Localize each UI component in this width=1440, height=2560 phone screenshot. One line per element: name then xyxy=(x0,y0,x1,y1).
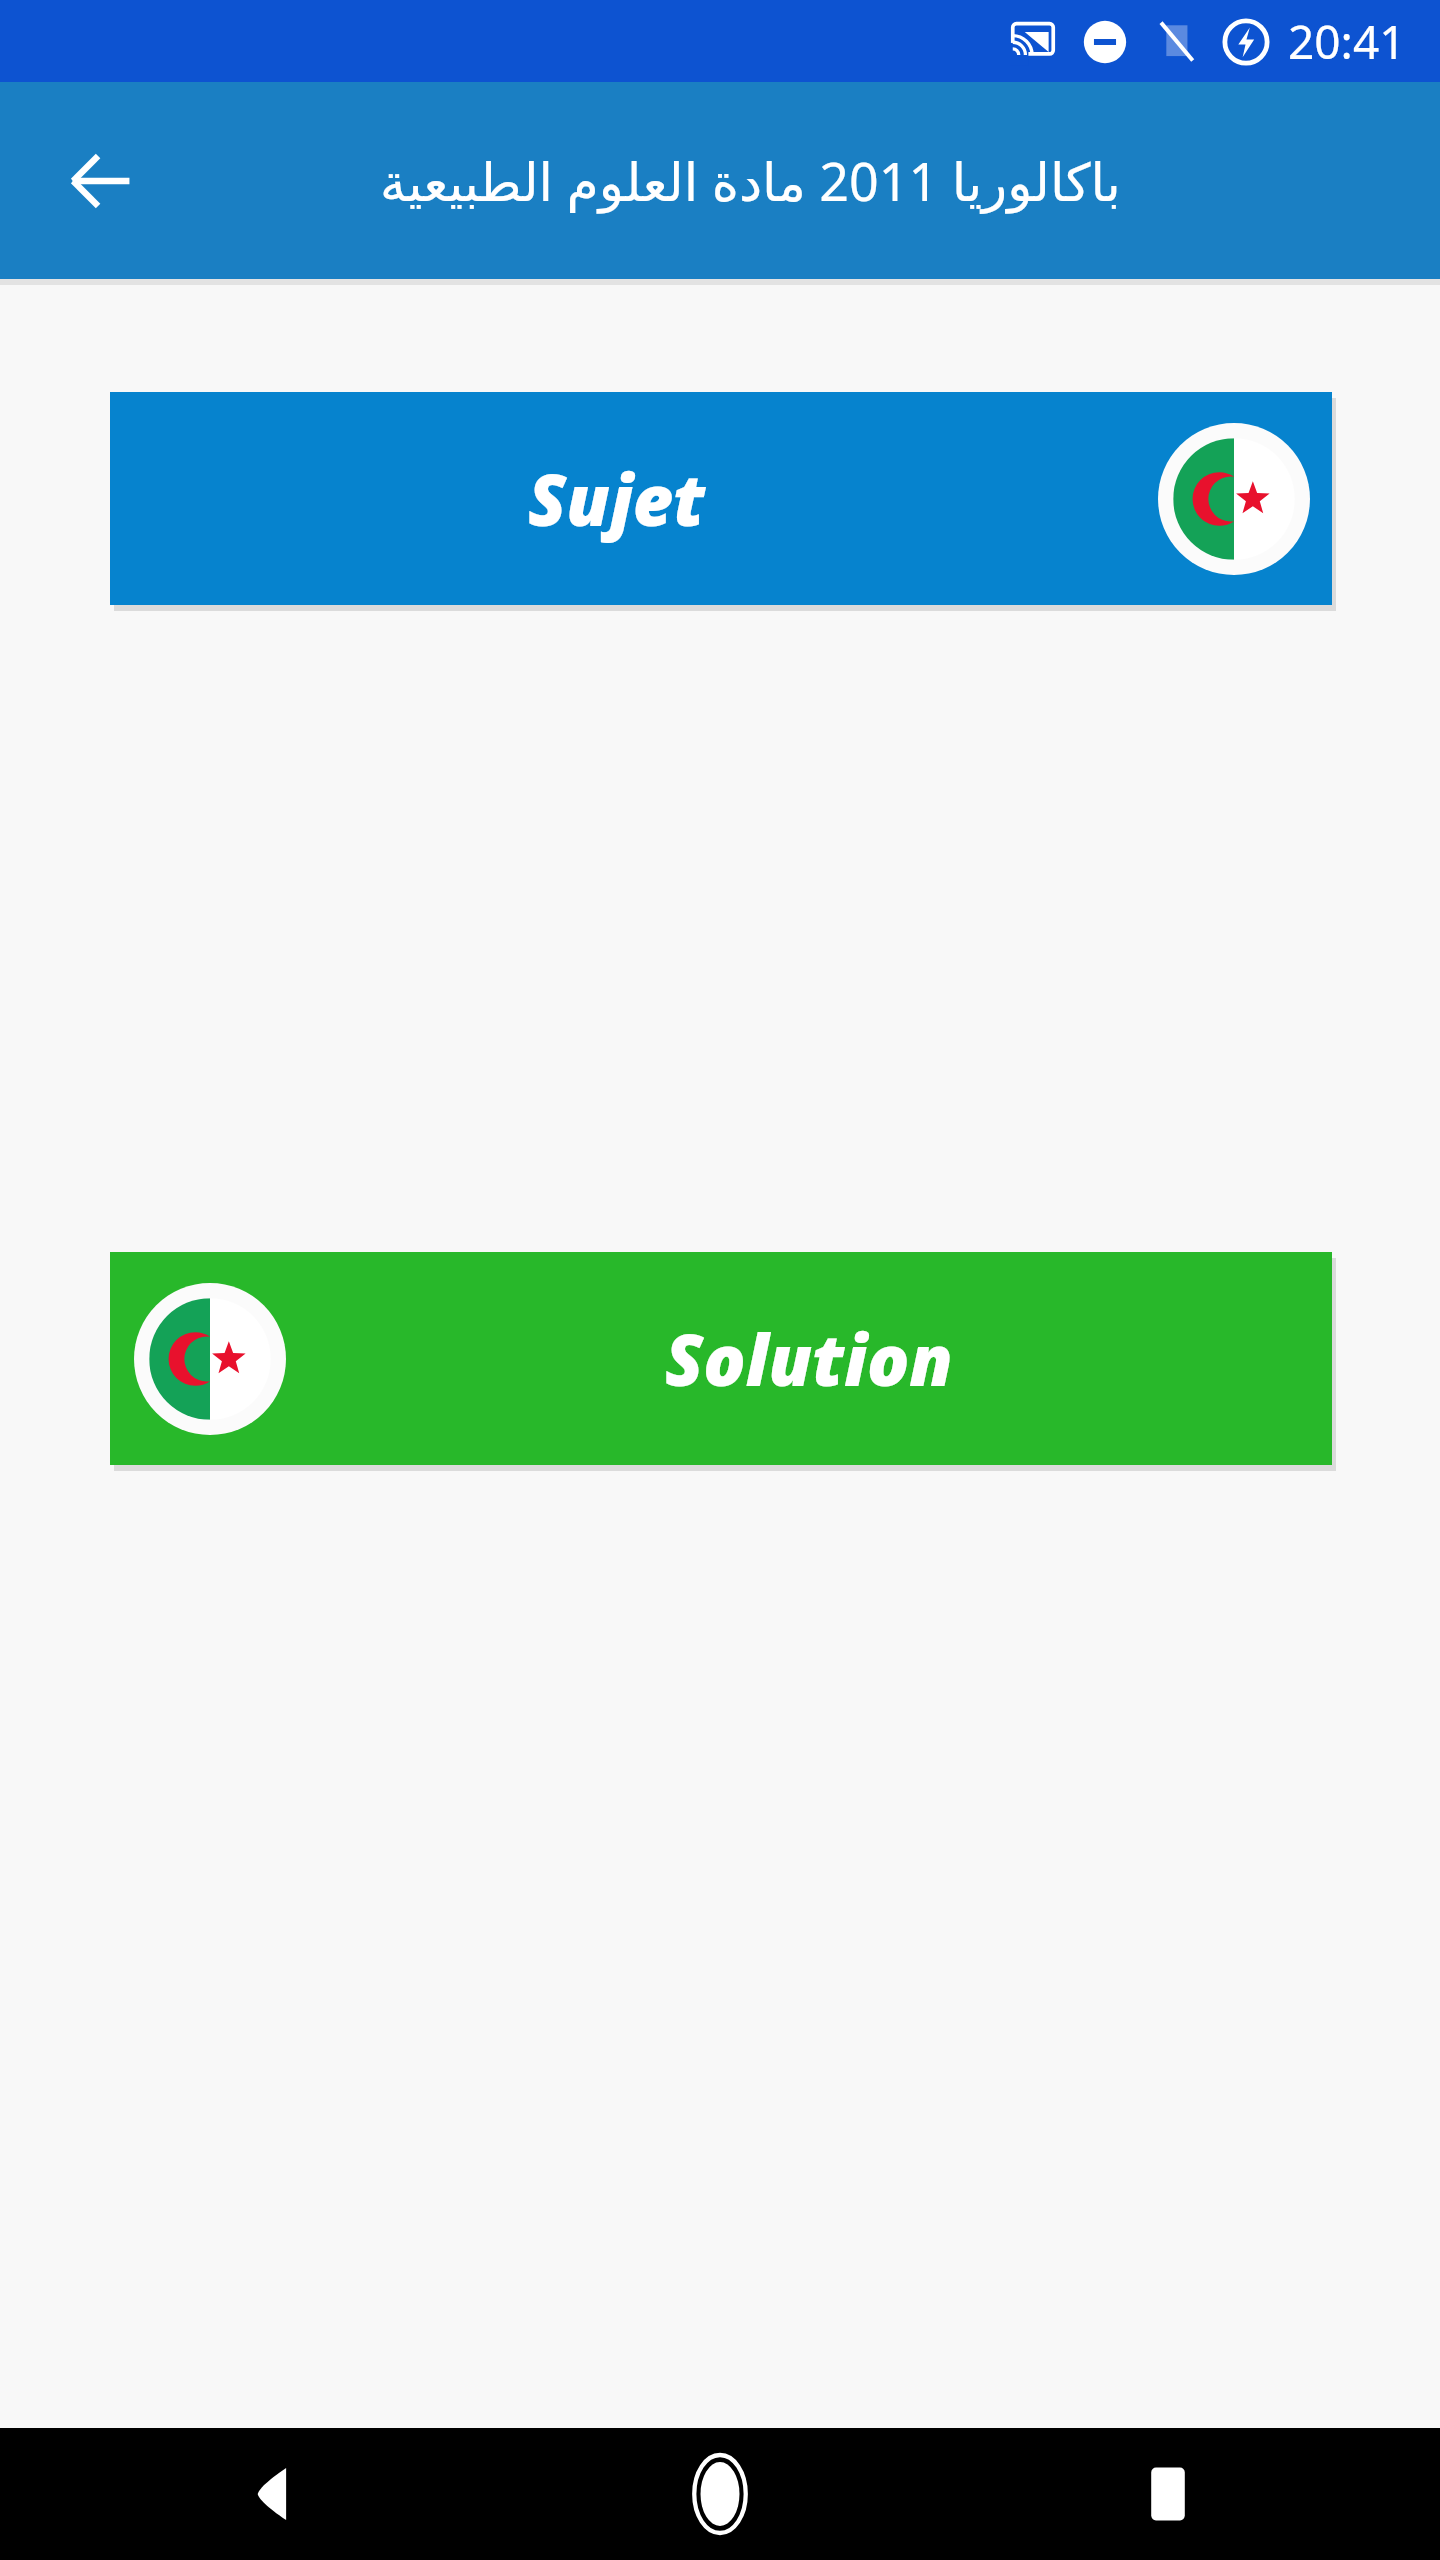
staticText: باكالوريا 2011 مادة العلوم الطبيعية xyxy=(380,145,1121,216)
button[interactable]: Back xyxy=(222,2438,334,2550)
staticText: Solution xyxy=(665,1311,953,1406)
staticText: Sujet xyxy=(528,451,706,546)
button[interactable]: Home xyxy=(664,2438,776,2550)
button[interactable]: Recent apps xyxy=(1112,2438,1224,2550)
button[interactable]: Solution xyxy=(110,1252,1332,1465)
staticText: 20:41 xyxy=(1288,10,1406,73)
button[interactable]: Sujet xyxy=(110,392,1332,605)
button[interactable]: Back xyxy=(50,131,150,231)
